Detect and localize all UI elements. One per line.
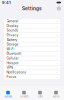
button[interactable]: Battery bbox=[4, 38, 60, 42]
button[interactable]: Display bbox=[4, 24, 60, 28]
staticText: Settings bbox=[22, 6, 42, 11]
staticText: More bbox=[53, 95, 59, 98]
staticText: › bbox=[56, 75, 57, 79]
button[interactable]: General bbox=[4, 19, 60, 23]
button[interactable]: Lists bbox=[32, 87, 48, 98]
staticText: Cellular bbox=[7, 56, 19, 60]
staticText: › bbox=[56, 42, 57, 46]
button[interactable]: More bbox=[48, 87, 64, 98]
staticText: › bbox=[56, 47, 57, 51]
staticText: › bbox=[56, 70, 57, 74]
button[interactable]: Account bbox=[57, 6, 61, 11]
staticText: General bbox=[7, 19, 19, 23]
staticText: VPN bbox=[7, 66, 13, 70]
staticText: › bbox=[56, 38, 57, 42]
button[interactable]: Privacy bbox=[4, 33, 60, 37]
staticText: › bbox=[56, 28, 57, 32]
staticText: Sounds bbox=[7, 28, 19, 32]
button[interactable]: VPN bbox=[4, 65, 60, 70]
button[interactable]: Sounds bbox=[4, 28, 60, 33]
button[interactable]: Home bbox=[0, 87, 16, 98]
staticText: › bbox=[56, 66, 57, 70]
button[interactable]: Hotspot bbox=[4, 61, 60, 65]
staticText: Privacy bbox=[7, 33, 19, 37]
button[interactable]: Storage bbox=[4, 42, 60, 46]
button[interactable]: Focus bbox=[4, 75, 60, 79]
staticText: › bbox=[56, 56, 57, 60]
button[interactable]: Cellular bbox=[4, 56, 60, 60]
staticText: Battery bbox=[7, 38, 18, 42]
staticText: › bbox=[56, 61, 57, 65]
staticText: Search bbox=[20, 95, 28, 98]
staticText: Lists bbox=[37, 95, 42, 98]
staticText: Hotspot bbox=[7, 61, 19, 65]
button[interactable]: Notifications bbox=[4, 70, 60, 74]
staticText: Display bbox=[7, 24, 19, 28]
staticText: › bbox=[56, 33, 57, 37]
staticText: Bluetooth bbox=[7, 52, 22, 56]
staticText: › bbox=[56, 24, 57, 28]
staticText: › bbox=[56, 52, 57, 56]
button[interactable]: Bluetooth bbox=[4, 52, 60, 56]
staticText: Home bbox=[4, 95, 11, 98]
staticText: Wi-Fi bbox=[7, 47, 15, 51]
staticText: Notifications bbox=[7, 70, 27, 74]
button[interactable]: Search bbox=[16, 87, 32, 98]
staticText: 9:41 bbox=[2, 0, 11, 5]
staticText: Focus bbox=[7, 75, 17, 79]
staticText: › bbox=[56, 19, 57, 23]
staticText: Storage bbox=[7, 42, 19, 46]
button[interactable]: Wi-Fi bbox=[4, 47, 60, 51]
